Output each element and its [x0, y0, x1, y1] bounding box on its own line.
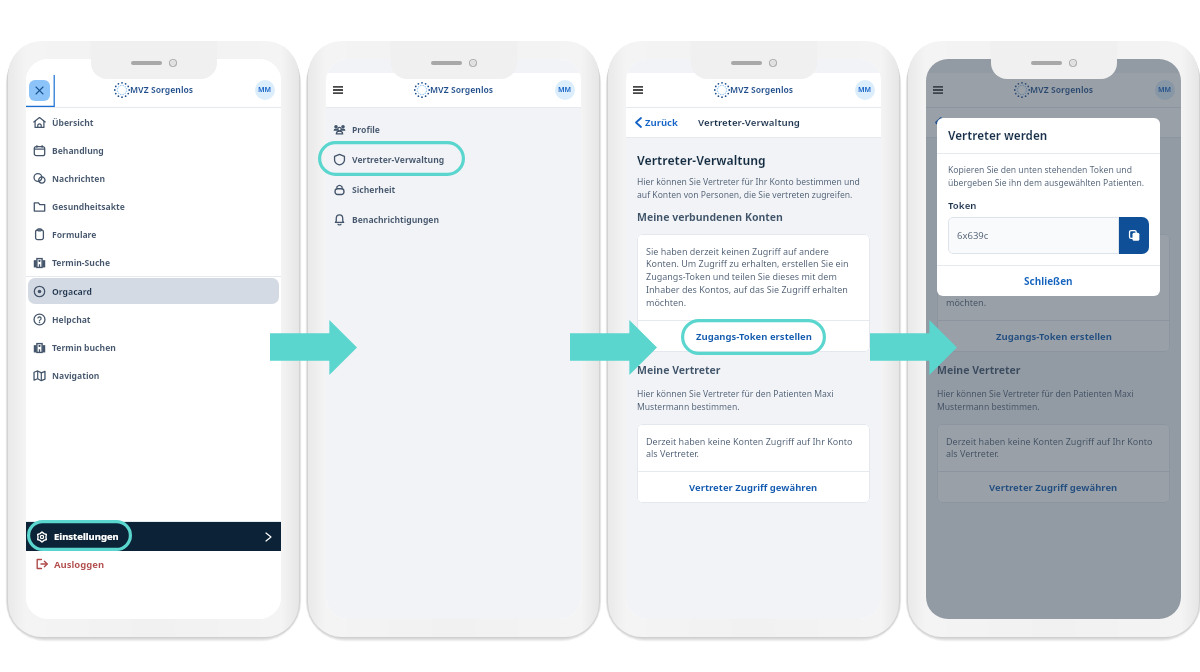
button[interactable]: Vertreter Zugriff gewähren — [637, 472, 870, 503]
button[interactable]: Orgacard — [28, 278, 279, 304]
staticText: MM — [258, 85, 272, 95]
button[interactable]: Übersicht — [28, 109, 279, 135]
button[interactable]: Einstellungen — [26, 522, 281, 551]
button[interactable]: Formulare — [28, 221, 279, 247]
staticText: Helpchat — [52, 314, 91, 326]
staticText: MVZ Sorgenlos — [430, 84, 494, 96]
button[interactable]: Behandlung — [28, 137, 279, 163]
staticText: Vertreter-Verwaltung — [998, 116, 1100, 129]
staticText: Sicherheit — [352, 184, 396, 196]
staticText: Orgacard — [52, 286, 92, 298]
button[interactable]: Kopieren — [1119, 217, 1149, 254]
button[interactable]: Sicherheit — [328, 175, 579, 203]
staticText: Vertreter-Verwaltung — [937, 152, 1066, 168]
button[interactable]: Menü — [929, 81, 947, 99]
button[interactable]: Menü — [629, 81, 647, 99]
button[interactable]: Navigation — [28, 362, 279, 388]
staticText: Vertreter-Verwaltung — [698, 116, 800, 129]
button[interactable]: Nachrichten — [28, 165, 279, 191]
staticText: MVZ Sorgenlos — [1030, 84, 1094, 96]
staticText: Vertreter werden — [948, 128, 1048, 144]
button[interactable]: Zugangs-Token erstellen — [937, 321, 1170, 352]
staticText: Vertreter Zugriff gewähren — [689, 481, 818, 494]
staticText: MVZ Sorgenlos — [130, 84, 194, 96]
staticText: Behandlung — [52, 145, 104, 157]
button[interactable]: Schließen — [937, 266, 1160, 296]
button[interactable]: Zurück — [936, 116, 978, 129]
staticText: Meine Vertreter — [637, 363, 721, 377]
button[interactable]: Zugangs-Token erstellen — [637, 321, 870, 352]
button[interactable]: Ausloggen — [26, 551, 281, 577]
staticText: Meine Vertreter — [937, 363, 1021, 377]
staticText: Zugangs-Token erstellen — [996, 330, 1112, 343]
staticText: MVZ Sorgenlos — [730, 84, 794, 96]
button[interactable]: Vertreter Zugriff gewähren — [937, 472, 1170, 503]
staticText: Formulare — [52, 229, 97, 241]
staticText: Vertreter-Verwaltung — [352, 154, 445, 166]
staticText: Vertreter-Verwaltung — [637, 152, 766, 168]
staticText: Einstellungen — [54, 530, 119, 543]
staticText: Derzeit haben keine Konten Zugriff auf I… — [946, 435, 1161, 460]
staticText: Zurück — [945, 116, 978, 129]
staticText: Hier können Sie Vertreter für Ihr Konto … — [937, 176, 1170, 201]
staticText: MM — [1158, 85, 1172, 95]
button[interactable]: Vertreter-Verwaltung — [328, 145, 579, 173]
button[interactable]: Zurück — [636, 116, 678, 129]
staticText: Meine verbundenen Konten — [937, 210, 1083, 224]
staticText: Hier können Sie Vertreter für Ihr Konto … — [637, 176, 870, 201]
button[interactable]: Helpchat — [28, 306, 279, 332]
staticText: Schließen — [1024, 274, 1073, 288]
staticText: Benachrichtigungen — [352, 214, 440, 226]
staticText: Sie haben derzeit keinen Zugriff auf and… — [946, 245, 1161, 309]
staticText: MM — [858, 85, 872, 95]
staticText: Vertreter Zugriff gewähren — [989, 481, 1118, 494]
staticText: Übersicht — [52, 117, 94, 129]
staticText: Zurück — [645, 116, 678, 129]
button[interactable]: Termin-Suche — [28, 249, 279, 275]
button[interactable]: Profile — [328, 115, 579, 143]
staticText: Ausloggen — [54, 558, 105, 571]
button[interactable]: Menü — [329, 81, 347, 99]
staticText: Meine verbundenen Konten — [637, 210, 783, 224]
button[interactable]: Profil — [1155, 80, 1175, 100]
staticText: Navigation — [52, 370, 100, 382]
staticText: Gesundheitsakte — [52, 201, 125, 213]
staticText: Derzeit haben keine Konten Zugriff auf I… — [646, 435, 861, 460]
button[interactable]: Profil — [555, 80, 575, 100]
button[interactable]: Termin buchen — [28, 334, 279, 360]
staticText: Zugangs-Token erstellen — [696, 330, 812, 343]
button[interactable]: Profil — [255, 80, 275, 100]
staticText: Profile — [352, 124, 380, 136]
staticText: Nachrichten — [52, 173, 106, 185]
staticText: 6x639c — [957, 229, 989, 242]
button[interactable]: Gesundheitsakte — [28, 193, 279, 219]
staticText: Termin buchen — [52, 342, 116, 354]
staticText: Token — [948, 199, 977, 212]
staticText: Sie haben derzeit keinen Zugriff auf and… — [646, 245, 861, 309]
staticText: Kopieren Sie den unten stehenden Token u… — [948, 164, 1149, 188]
button[interactable]: Benachrichtigungen — [328, 205, 579, 233]
button[interactable]: Schließen — [29, 80, 50, 101]
staticText: Hier können Sie Vertreter für den Patien… — [937, 388, 1170, 413]
button[interactable]: Profil — [855, 80, 875, 100]
staticText: MM — [558, 85, 572, 95]
staticText: Hier können Sie Vertreter für den Patien… — [637, 388, 870, 413]
staticText: Termin-Suche — [52, 257, 111, 269]
